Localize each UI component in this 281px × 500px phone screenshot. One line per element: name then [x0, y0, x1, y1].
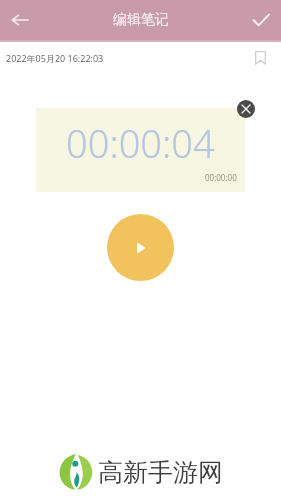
button[interactable]: 00:00:04	[36, 108, 245, 192]
button[interactable]: Play	[107, 214, 174, 281]
staticText: 高新手游网	[98, 457, 223, 488]
staticText: 2022年05月20 16:22:03	[6, 52, 104, 64]
staticText: 00:00:04	[66, 117, 215, 169]
staticText: 编辑笔记	[113, 11, 169, 29]
button[interactable]: Close	[237, 100, 255, 118]
staticText: 00:00:00	[205, 172, 237, 183]
button[interactable]: Save	[241, 0, 281, 40]
button[interactable]: Bookmark	[249, 47, 271, 69]
button[interactable]: Back	[0, 0, 40, 40]
